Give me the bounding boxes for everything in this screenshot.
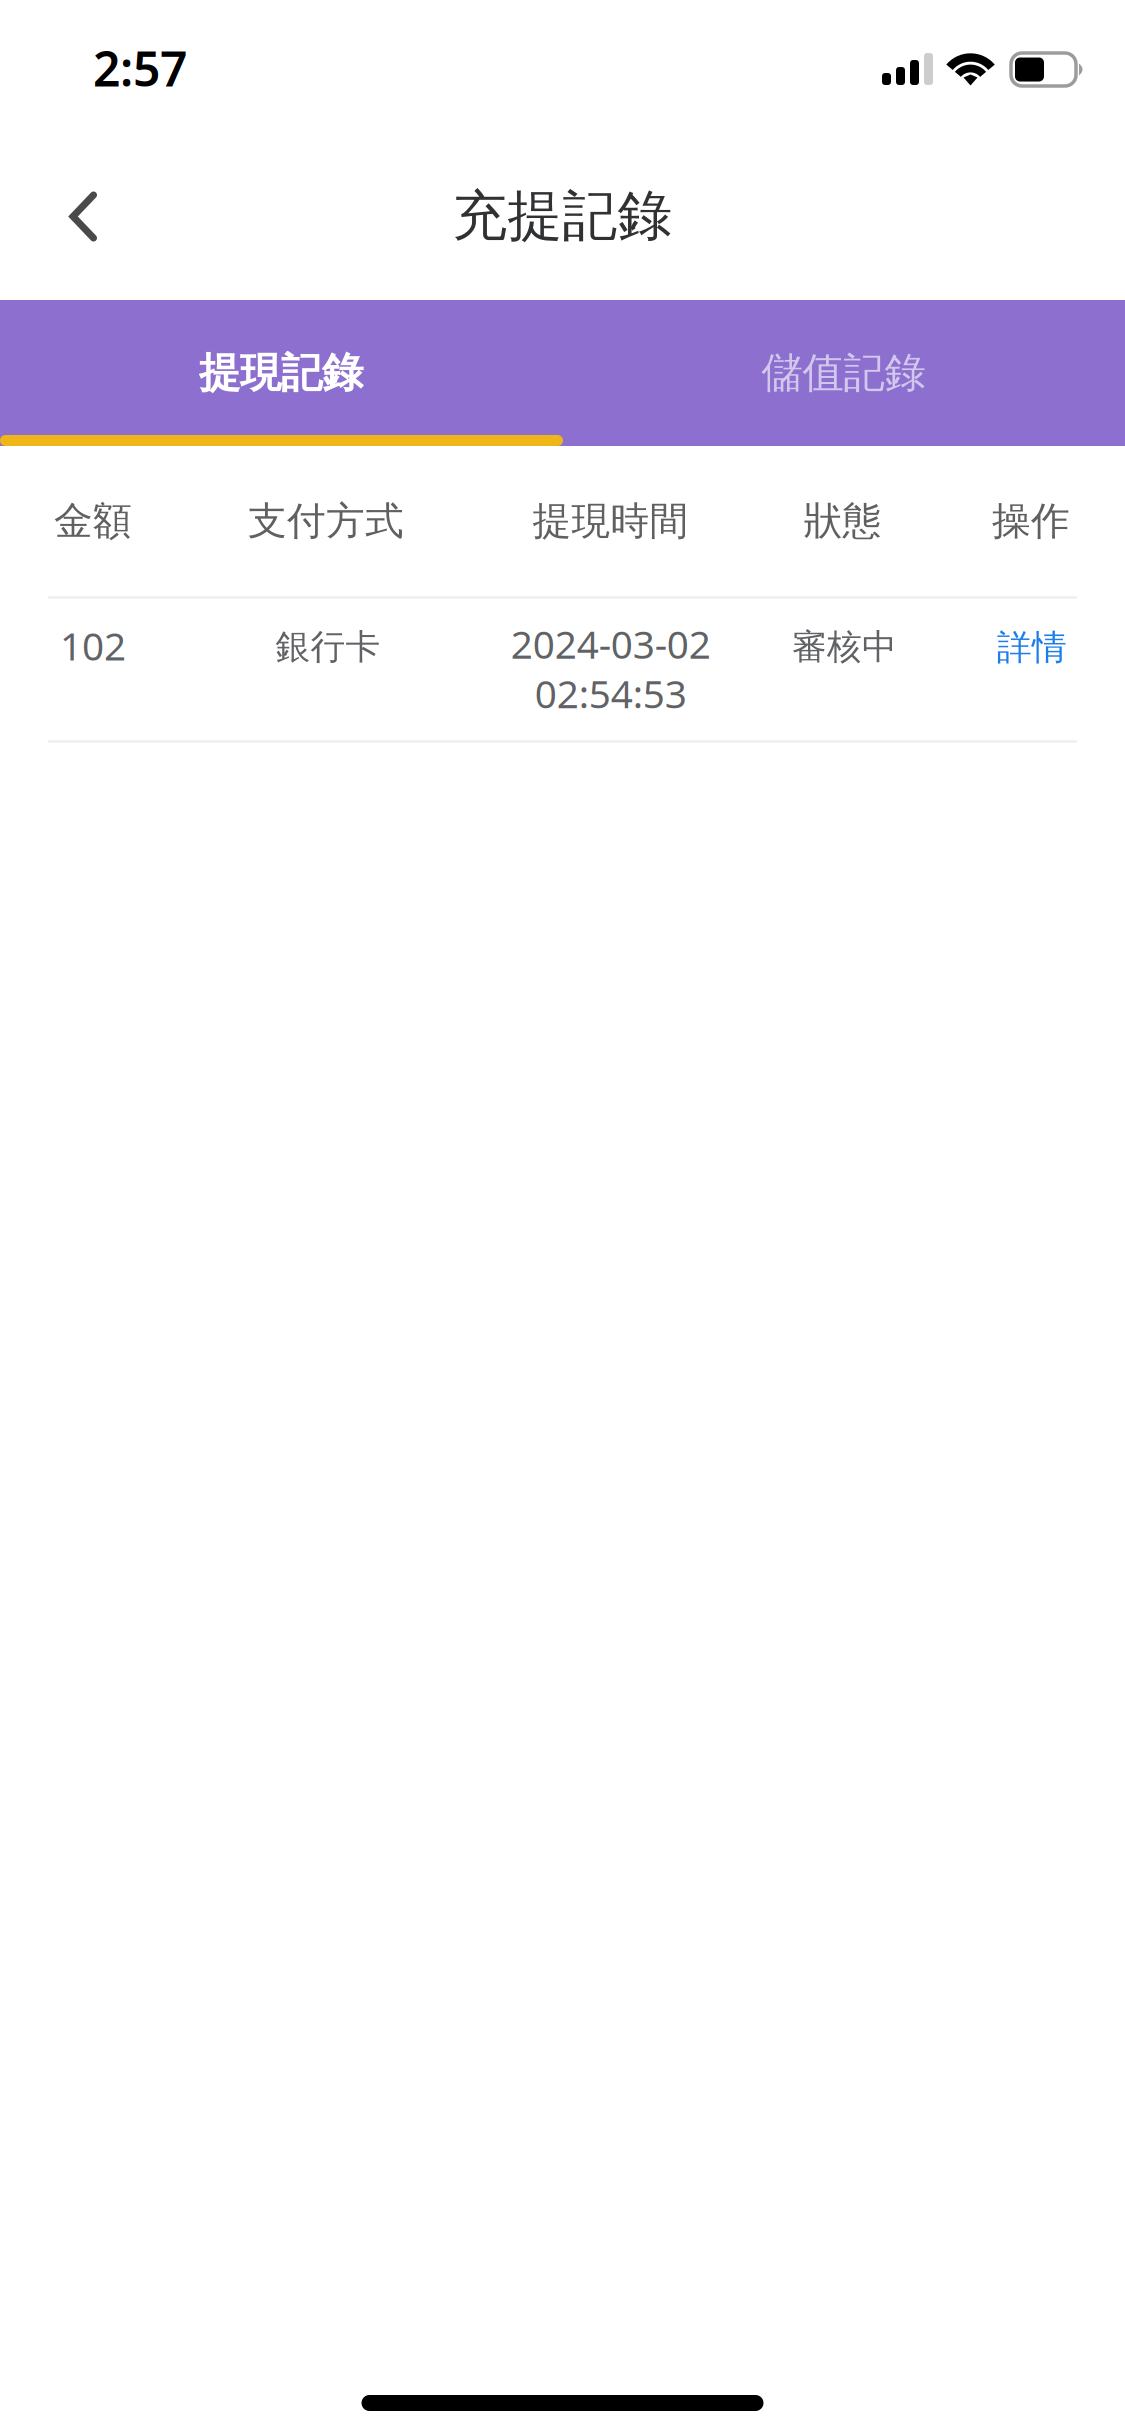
- button[interactable]: 提現記錄: [0, 300, 562, 446]
- staticText: 狀態: [803, 497, 881, 545]
- staticText: 2:57: [93, 36, 187, 100]
- staticText: 支付方式: [248, 497, 404, 545]
- staticText: 操作: [992, 497, 1070, 545]
- staticText: 銀行卡: [275, 626, 380, 668]
- button[interactable]: 儲值記錄: [562, 300, 1125, 446]
- staticText: 詳情: [997, 626, 1067, 669]
- button[interactable]: Back: [25, 158, 141, 274]
- button[interactable]: 詳情: [977, 617, 1087, 677]
- staticText: 102: [60, 620, 126, 671]
- staticText: 提現時間: [532, 497, 688, 545]
- staticText: 2024-03-02 02:54:53: [510, 618, 710, 719]
- staticText: 金額: [54, 497, 132, 545]
- staticText: 提現記錄: [199, 348, 363, 398]
- staticText: 儲值記錄: [761, 348, 925, 398]
- staticText: 充提記錄: [452, 182, 672, 249]
- staticText: 審核中: [792, 626, 897, 668]
